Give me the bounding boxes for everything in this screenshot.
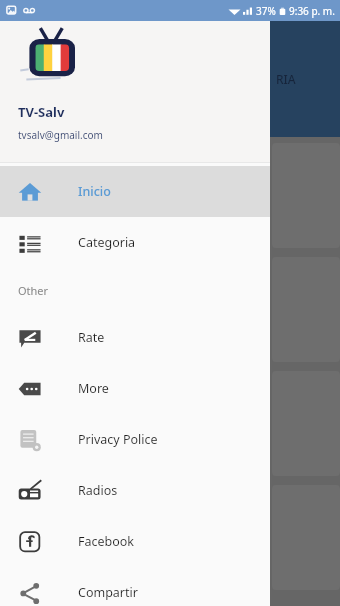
button[interactable]: Facebook xyxy=(0,516,270,567)
button[interactable]: Compartir xyxy=(0,567,270,606)
staticText: 9:36 p. m. xyxy=(289,4,335,18)
staticText: Other xyxy=(18,283,49,298)
staticText: Radios xyxy=(78,482,118,499)
staticText: More xyxy=(78,380,109,397)
button[interactable]: Radios xyxy=(0,465,270,516)
staticText: Privacy Police xyxy=(78,431,158,448)
staticText: 37% xyxy=(256,4,276,18)
button[interactable]: More xyxy=(0,363,270,414)
button[interactable]: Privacy Police xyxy=(0,414,270,465)
staticText: tvsalv@gmail.com xyxy=(18,128,103,142)
button[interactable]: TV-Salv xyxy=(0,21,270,163)
staticText: Rate xyxy=(78,329,105,346)
staticText: Categoria xyxy=(78,234,136,251)
staticText: TV-Salv xyxy=(18,103,65,121)
button[interactable]: Inicio xyxy=(0,166,270,217)
button[interactable]: Categoria xyxy=(0,217,270,268)
staticText: Compartir xyxy=(78,584,138,601)
staticText: Facebook xyxy=(78,533,135,550)
other: Notifications xyxy=(5,0,43,21)
staticText: RIA xyxy=(276,71,296,87)
staticText: Inicio xyxy=(78,183,111,200)
button[interactable]: Rate xyxy=(0,312,270,363)
